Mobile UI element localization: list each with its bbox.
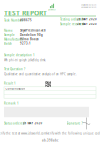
staticText: Result 1 bbox=[4, 82, 16, 85]
staticText: Verify the test at www.jdcworld.com/veri… bbox=[0, 132, 100, 135]
staticText: Sample received bbox=[60, 22, 84, 26]
staticText: Name bbox=[4, 29, 13, 32]
staticText: Dandelion 90g bbox=[20, 33, 43, 37]
staticText: Test Question ? bbox=[4, 67, 25, 71]
staticText: Task Number bbox=[4, 19, 23, 22]
staticText: Testing ordered bbox=[60, 18, 83, 21]
staticText: Web: www.jdcworld.com bbox=[81, 6, 96, 8]
staticText: E-mail: info@jdcworld.com bbox=[81, 4, 96, 6]
staticText: TEST REPORT bbox=[4, 8, 47, 17]
staticText: Concentration bbox=[5, 87, 25, 90]
staticText: Stryx/Prednisol-ve8 bbox=[20, 29, 46, 32]
staticText: Sample bbox=[4, 33, 15, 37]
staticText: 28 MAY 2020 bbox=[22, 121, 42, 125]
staticText: Qualitative and quantitative analysis of… bbox=[4, 72, 77, 76]
staticText: Remark 1 bbox=[4, 102, 19, 105]
staticText: Manufacturer bbox=[4, 38, 23, 41]
staticText: Batch bbox=[4, 42, 12, 45]
staticText: 28 MAY 2020 bbox=[77, 22, 97, 26]
staticText: Hilroa Boaza bbox=[20, 37, 39, 41]
staticText: Status ordered bbox=[4, 122, 25, 125]
staticText: ab-398abc bbox=[42, 139, 58, 142]
staticText: 9273-1 bbox=[20, 42, 31, 45]
staticText: Sample description 1 bbox=[4, 53, 35, 57]
staticText: JDCWORLD bbox=[48, 9, 55, 11]
staticText: 28 MAY 2020 bbox=[77, 17, 97, 21]
staticText: #08675 bbox=[20, 18, 32, 22]
staticText: Signature ? bbox=[66, 122, 82, 125]
staticText: Wh phi-tri spicyh jdkc8dq dmk. bbox=[4, 58, 46, 62]
